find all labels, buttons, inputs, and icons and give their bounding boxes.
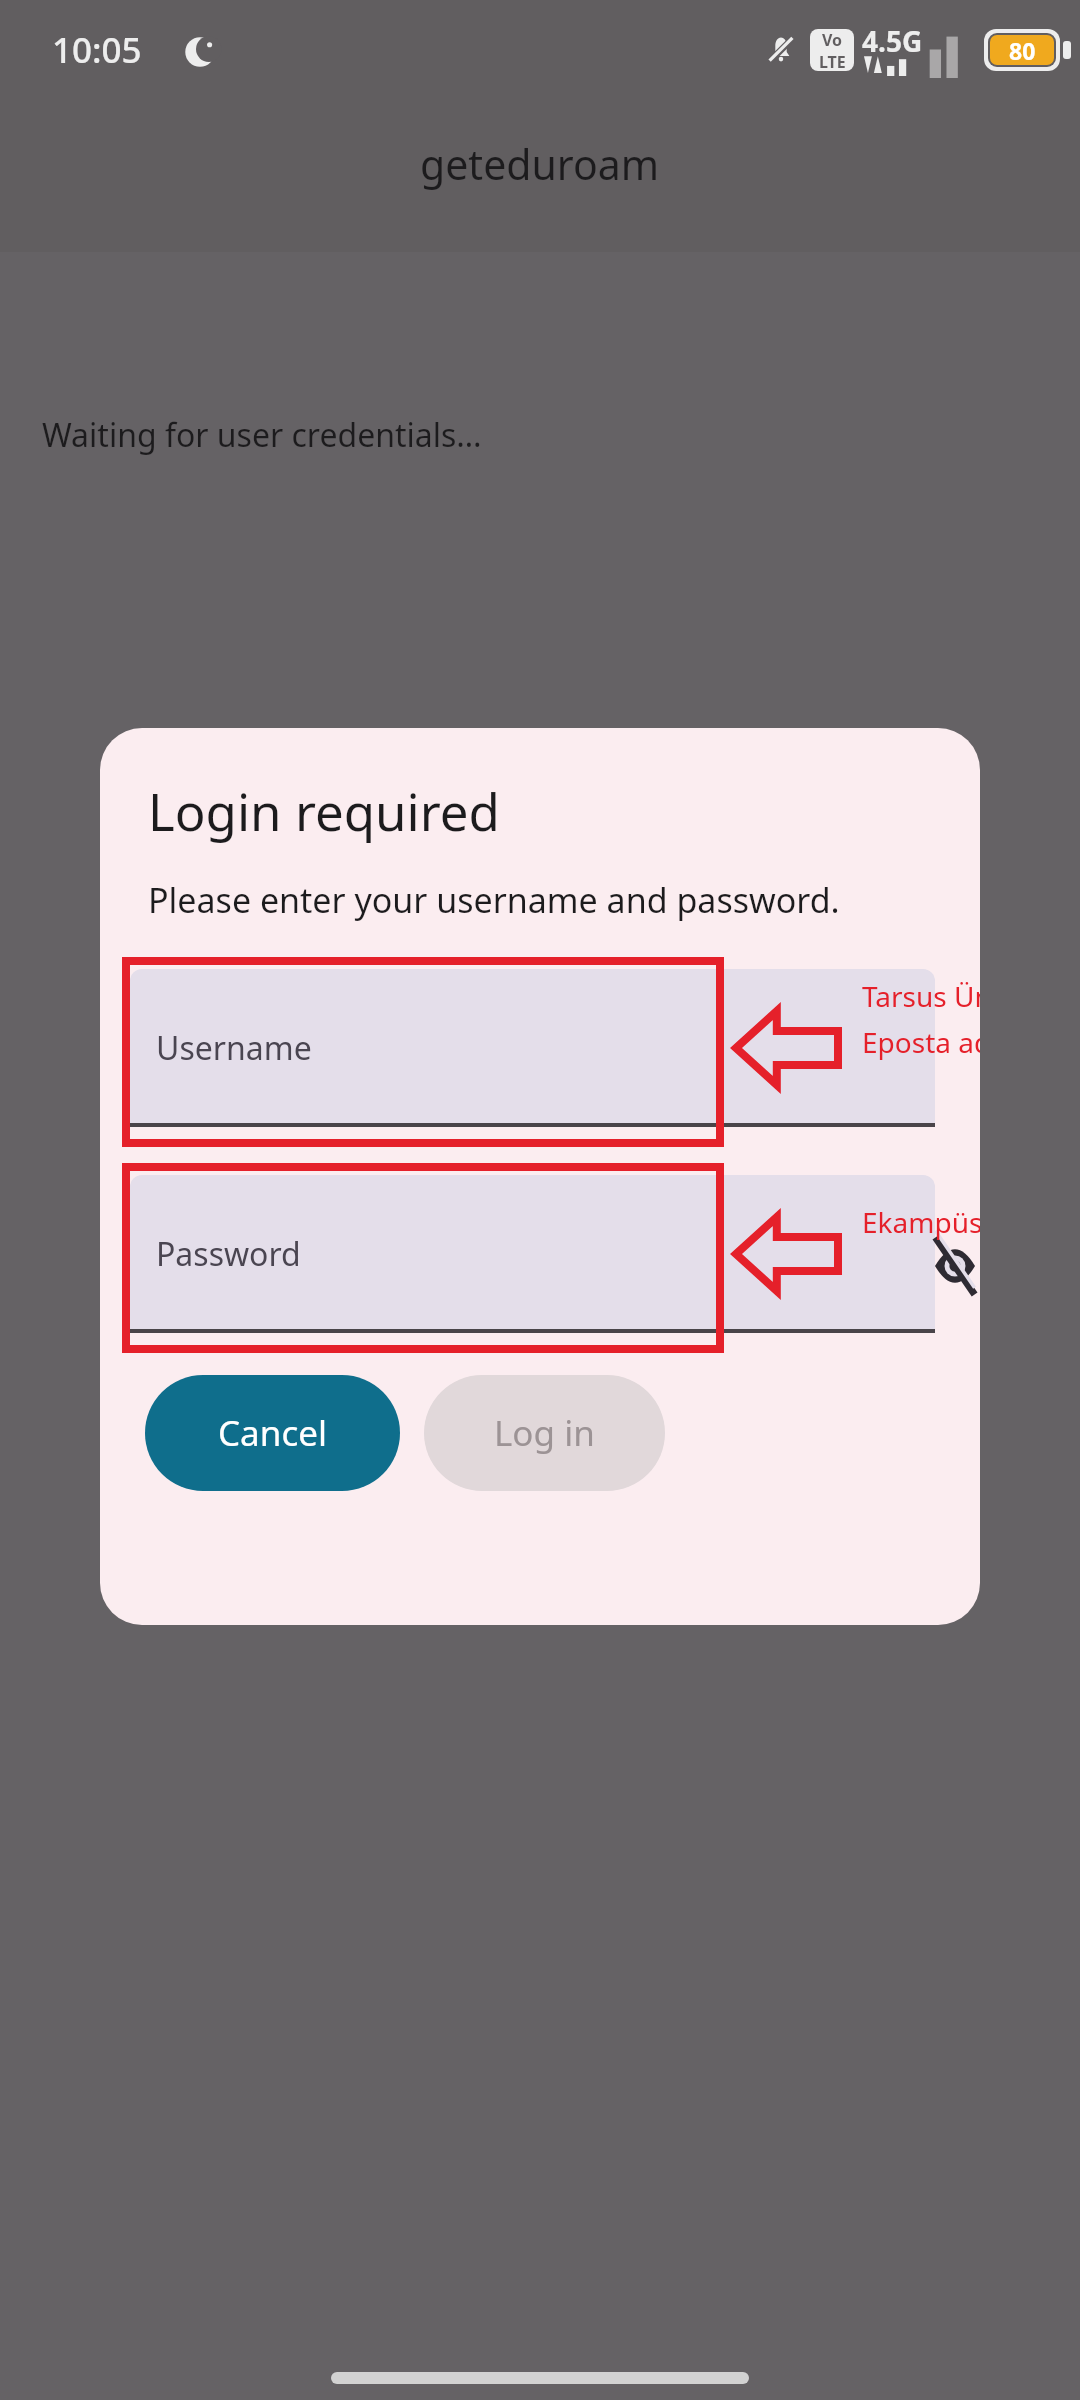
staticText: Ekampüs şifreniz [862,1203,980,1241]
button[interactable]: Log in [424,1375,665,1491]
staticText: Vo [822,29,843,51]
staticText: Eposta adresiniz [862,1023,980,1061]
staticText: Username [156,1026,312,1070]
staticText: Login required [148,776,500,845]
staticText: Waiting for user credentials… [42,413,482,457]
staticText: Please enter your username and password. [148,877,840,923]
staticText: Cancel [218,1409,327,1457]
staticText: Log in [494,1409,595,1457]
button[interactable]: Cancel [145,1375,400,1491]
button[interactable]: Username [130,969,935,1127]
staticText: 10:05 [52,26,142,74]
staticText: 4.5G [862,22,923,60]
button[interactable]: Show password [930,1231,980,1301]
button[interactable]: Password [130,1175,935,1333]
staticText: LTE [819,51,846,71]
staticText: Password [156,1232,301,1276]
staticText: Tarsus Üniversitesi [862,977,980,1015]
staticText: geteduroam [420,136,660,192]
staticText: 80 [1009,35,1036,65]
